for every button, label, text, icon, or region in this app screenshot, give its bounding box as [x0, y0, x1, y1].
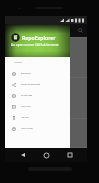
button[interactable]: Search: [78, 28, 83, 33]
staticText: Share this application: [21, 83, 41, 86]
staticText: Bookmarks: [21, 72, 32, 75]
button[interactable]: [5, 78, 87, 118]
button[interactable]: More Apps: [5, 101, 70, 112]
staticText: RepoExplorer: [22, 34, 56, 41]
button[interactable]: Back: [17, 149, 29, 161]
staticText: Source Code: [21, 94, 33, 97]
staticText: More Apps: [21, 105, 31, 108]
button[interactable]: About Author: [5, 123, 70, 134]
button[interactable]: Bookmarks: [5, 68, 70, 79]
staticText: Options: [14, 61, 23, 64]
button[interactable]: Share this application: [5, 79, 70, 90]
staticText: App Info: [21, 116, 29, 119]
button[interactable]: [5, 38, 87, 77]
button[interactable]: Source Code: [5, 90, 70, 101]
staticText: An open source GitHub browser: [11, 43, 59, 47]
button[interactable]: App Info: [5, 112, 70, 123]
button[interactable]: Recents: [64, 149, 76, 161]
button[interactable]: Home: [40, 149, 52, 161]
staticText: About Author: [21, 127, 34, 130]
button[interactable]: [5, 119, 87, 147]
